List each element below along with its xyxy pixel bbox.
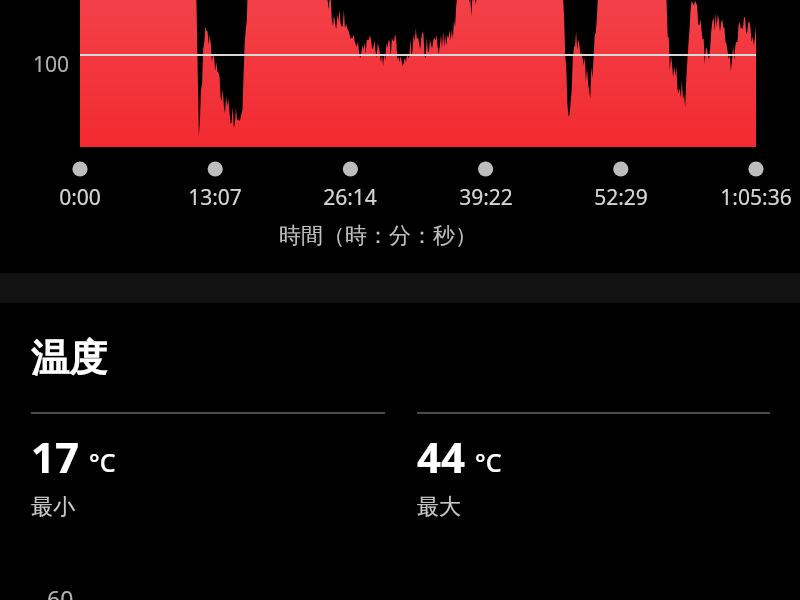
staticText: 最小 xyxy=(31,493,75,521)
staticText: 0:00 xyxy=(20,183,140,212)
staticText: 52:29 xyxy=(561,183,681,212)
staticText: 温度 xyxy=(31,334,107,382)
staticText: 1:05:36 xyxy=(696,183,800,212)
staticText: 44 xyxy=(417,428,466,485)
button[interactable]: 温度 xyxy=(0,303,800,600)
staticText: 60 xyxy=(47,583,74,600)
staticText: 最大 xyxy=(417,493,461,521)
staticText: 13:07 xyxy=(155,183,275,212)
staticText: °C xyxy=(475,445,502,479)
staticText: 26:14 xyxy=(290,183,410,212)
button[interactable]: 44 xyxy=(400,412,800,521)
button[interactable]: 17 xyxy=(0,412,400,521)
staticText: °C xyxy=(89,445,116,479)
staticText: 100 xyxy=(33,50,70,79)
staticText: 17 xyxy=(31,428,80,485)
staticText: 39:22 xyxy=(426,183,546,212)
staticText: 時間（時：分：秒） xyxy=(0,222,756,250)
